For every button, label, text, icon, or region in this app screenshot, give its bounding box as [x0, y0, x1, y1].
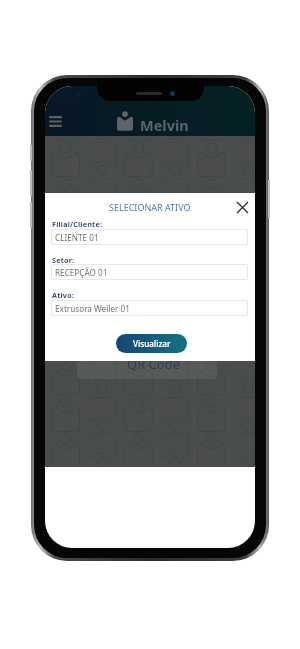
staticText: Carrier — [46, 89, 73, 100]
staticText: SELECIONAR ATIVO — [109, 201, 191, 213]
staticText: Filial/Cliente: — [52, 219, 103, 229]
staticText: RECEPÇÃO 01 — [55, 267, 108, 278]
button[interactable]: CLIENTE 01 — [51, 229, 248, 245]
button[interactable]: Visualizar — [116, 334, 187, 353]
staticText: CLIENTE 01 — [55, 232, 99, 243]
button[interactable]: Open navigation menu — [45, 112, 65, 130]
staticText: Extrusora Weiler 01 — [55, 303, 130, 314]
staticText: Visualizar — [133, 338, 171, 349]
staticText: QR Code — [127, 355, 181, 373]
staticText: Melvin — [140, 115, 189, 135]
staticText: Ativo: — [52, 290, 75, 300]
staticText: Setor: — [52, 255, 75, 265]
button[interactable]: Extrusora Weiler 01 — [51, 300, 248, 316]
button[interactable]: Close dialog — [233, 198, 252, 217]
button[interactable]: RECEPÇÃO 01 — [51, 264, 248, 280]
